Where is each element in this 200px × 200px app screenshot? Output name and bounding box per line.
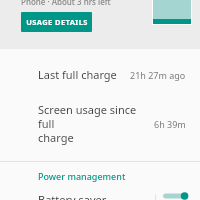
button[interactable]: Screen usage since full charge bbox=[0, 92, 200, 155]
staticText: Power management bbox=[38, 170, 126, 182]
staticText: USAGE DETAILS bbox=[26, 17, 88, 27]
button[interactable]: Battery saver toggle bbox=[156, 192, 200, 200]
staticText: Phone · About 3 hrs left bbox=[21, 0, 111, 7]
button[interactable]: USAGE DETAILS bbox=[21, 12, 92, 32]
staticText: 21h 27m ago bbox=[130, 69, 186, 81]
staticText: Last full charge bbox=[38, 67, 117, 82]
staticText: Battery saver bbox=[38, 192, 107, 200]
button[interactable]: Battery saver bbox=[0, 192, 200, 200]
button[interactable]: Last full charge bbox=[0, 57, 200, 92]
staticText: 6h 39m bbox=[154, 118, 186, 130]
staticText: Screen usage since full charge bbox=[38, 102, 148, 145]
